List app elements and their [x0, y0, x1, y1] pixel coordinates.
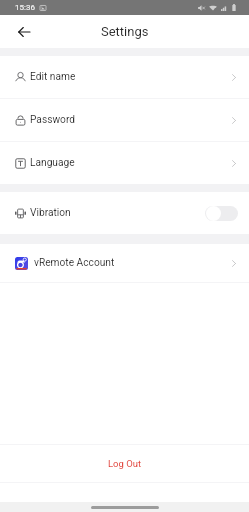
staticText: vRemote Account	[34, 257, 115, 269]
staticText: Log Out	[108, 458, 142, 469]
button[interactable]: Back	[11, 19, 36, 44]
button[interactable]: vRemote Account	[0, 244, 249, 282]
staticText: Password	[30, 114, 75, 126]
button[interactable]: Language	[0, 142, 249, 184]
button[interactable]: Vibration	[0, 192, 249, 234]
button[interactable]: Password	[0, 99, 249, 141]
button[interactable]: Log Out	[0, 445, 249, 482]
staticText: 15:36	[15, 3, 35, 12]
button[interactable]: Edit name	[0, 56, 249, 98]
staticText: Vibration	[30, 207, 71, 219]
staticText: Language	[30, 157, 75, 169]
button[interactable]: Vibration toggle	[205, 205, 238, 221]
staticText: Settings	[101, 24, 149, 39]
staticText: Edit name	[30, 71, 76, 83]
